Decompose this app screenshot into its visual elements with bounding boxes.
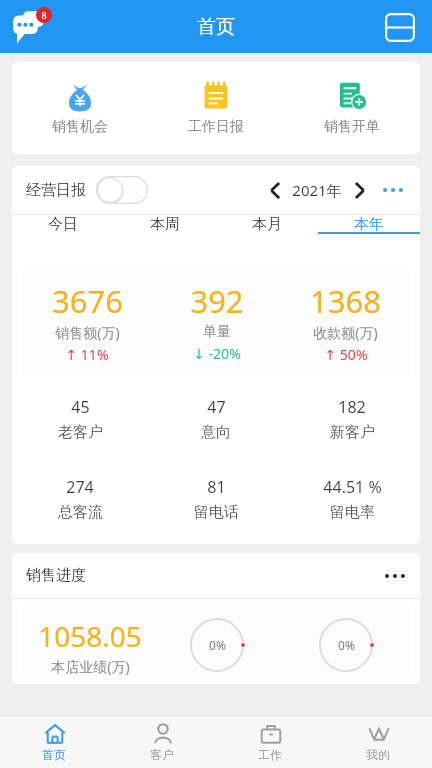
staticText: 收款额(万) <box>313 323 378 342</box>
staticText: 1368 <box>310 280 381 322</box>
staticText: 本年 <box>354 215 384 234</box>
staticText: 47 <box>207 396 226 418</box>
button[interactable]: Toggle daily report <box>96 176 148 204</box>
staticText: 销售开单 <box>324 118 380 136</box>
staticText: 8 <box>41 9 47 21</box>
staticText: ↑ 11% <box>65 345 109 364</box>
staticText: 本店业绩(万) <box>51 657 130 676</box>
button[interactable]: Messages <box>10 5 54 49</box>
staticText: 留电话 <box>194 503 239 522</box>
button[interactable]: 首页 <box>0 722 108 762</box>
button[interactable]: 3676 <box>22 280 152 364</box>
button[interactable]: 工作 <box>216 722 324 762</box>
button[interactable]: 销售进度 <box>12 553 420 598</box>
staticText: 总客流 <box>58 503 103 522</box>
staticText: 392 <box>190 280 244 322</box>
button[interactable]: 销售开单 <box>284 72 420 144</box>
button[interactable]: 47 <box>148 396 284 442</box>
staticText: 3676 <box>52 280 123 322</box>
staticText: 留电率 <box>330 503 375 522</box>
staticText: 工作日报 <box>188 118 244 136</box>
staticText: 今日 <box>48 215 78 234</box>
staticText: 182 <box>338 396 366 418</box>
button[interactable]: 81 <box>148 476 284 522</box>
button[interactable]: Next year <box>346 177 372 203</box>
staticText: 首页 <box>42 747 66 762</box>
button[interactable]: 工作日报 <box>148 72 284 144</box>
button[interactable]: 我的 <box>324 722 432 762</box>
staticText: 新客户 <box>330 423 375 442</box>
button[interactable]: Previous year <box>262 177 288 203</box>
staticText: 本月 <box>252 215 282 234</box>
staticText: 老客户 <box>58 423 103 442</box>
button[interactable]: 本月 <box>216 215 318 234</box>
staticText: 销售机会 <box>52 118 108 136</box>
staticText: 44.51 % <box>323 476 382 498</box>
staticText: 首页 <box>197 15 235 39</box>
button[interactable]: Layout <box>380 7 420 47</box>
staticText: 销售进度 <box>26 566 86 585</box>
staticText: 销售额(万) <box>55 323 120 342</box>
staticText: 0% <box>338 637 355 653</box>
button[interactable]: More options <box>380 177 406 203</box>
staticText: 我的 <box>366 747 390 762</box>
staticText: 单量 <box>203 323 231 341</box>
button[interactable]: 本周 <box>114 215 216 234</box>
button[interactable]: 44.51 % <box>284 476 420 522</box>
button[interactable]: 182 <box>284 396 420 442</box>
staticText: 意向 <box>201 423 231 442</box>
staticText: 工作 <box>258 747 282 762</box>
button[interactable]: 客户 <box>108 722 216 762</box>
staticText: 81 <box>207 476 226 498</box>
staticText: 本周 <box>150 215 180 234</box>
staticText: 45 <box>71 396 90 418</box>
staticText: 2021年 <box>292 180 342 200</box>
staticText: 1058.05 <box>38 617 142 655</box>
button[interactable]: 本年 <box>318 215 420 234</box>
staticText: 274 <box>66 476 94 498</box>
staticText: ↑ 50% <box>324 345 368 364</box>
button[interactable]: 1368 <box>281 280 410 364</box>
button[interactable]: 392 <box>152 280 281 363</box>
staticText: 0% <box>209 637 226 653</box>
button[interactable]: 274 <box>12 476 148 522</box>
button[interactable]: 销售机会 <box>12 72 148 144</box>
staticText: 经营日报 <box>26 181 86 200</box>
button[interactable]: 今日 <box>12 215 114 234</box>
staticText: 客户 <box>150 747 174 762</box>
staticText: ↓ -20% <box>193 344 241 363</box>
button[interactable]: 45 <box>12 396 148 442</box>
